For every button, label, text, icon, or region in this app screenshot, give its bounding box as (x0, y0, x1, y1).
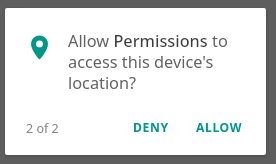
staticText: Allow Permissions to access this device'… (68, 30, 240, 94)
button[interactable]: DENY (128, 111, 174, 141)
staticText: DENY (133, 119, 169, 136)
other: Location permission (25, 33, 54, 62)
button[interactable]: ALLOW (190, 111, 248, 141)
staticText: 2 of 2 (26, 120, 59, 137)
staticText: ALLOW (196, 119, 243, 136)
